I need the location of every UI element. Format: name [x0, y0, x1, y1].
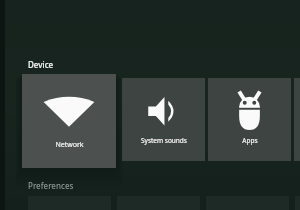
button[interactable]: Network	[22, 74, 116, 168]
button[interactable]: System sounds	[122, 78, 205, 161]
staticText: System sounds	[141, 136, 187, 145]
button[interactable]: Apps	[208, 78, 291, 161]
staticText: Apps	[242, 136, 258, 145]
staticText: Preferences	[28, 180, 74, 191]
staticText: Device	[28, 59, 54, 70]
staticText: Network	[55, 140, 84, 150]
